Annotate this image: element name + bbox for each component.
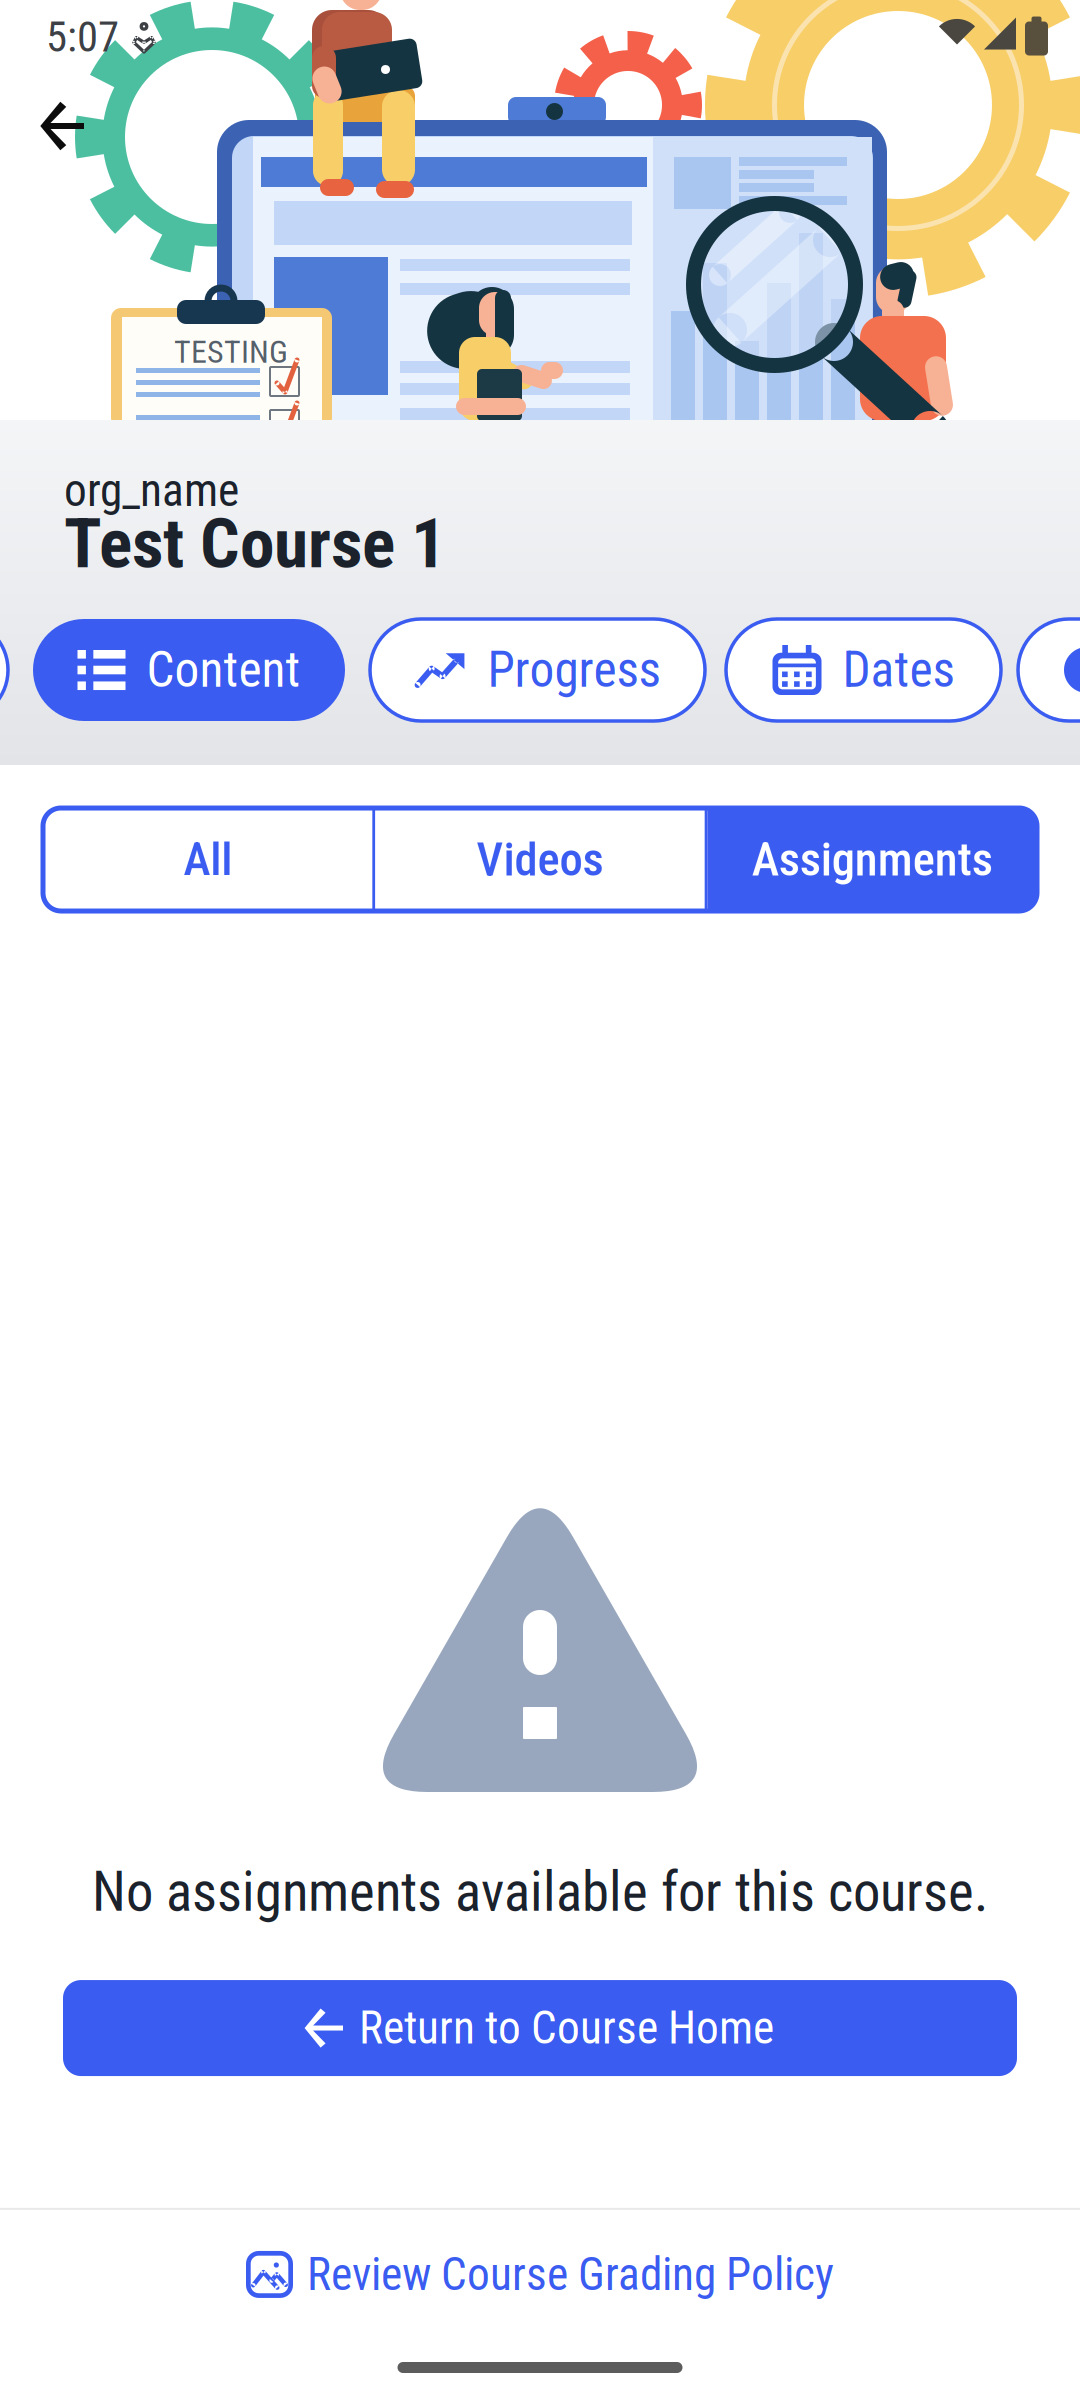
staticText: Videos: [476, 832, 603, 887]
button[interactable]: Progress: [370, 619, 705, 721]
staticText: org_name: [64, 464, 239, 517]
button[interactable]: Videos: [375, 808, 705, 911]
staticText: No assignments available for this course…: [92, 1860, 988, 1924]
staticText: Review Course Grading Policy: [307, 2248, 834, 2301]
staticText: 5:07: [46, 12, 119, 62]
staticText: Progress: [487, 641, 660, 699]
button[interactable]: Dates: [726, 619, 1001, 721]
button[interactable]: Review Course Grading Policy: [0, 2210, 1080, 2344]
button[interactable]: Assignments: [708, 808, 1037, 911]
staticText: Return to Course Home: [359, 2001, 774, 2055]
staticText: Test Course 1: [64, 503, 446, 584]
staticText: Assignments: [752, 832, 993, 887]
button[interactable]: Content: [33, 619, 345, 721]
button[interactable]: Back: [12, 76, 114, 176]
button[interactable]: All: [43, 808, 372, 911]
staticText: TESTING: [174, 333, 288, 370]
staticText: Dates: [842, 641, 954, 699]
staticText: All: [183, 832, 232, 887]
staticText: Content: [146, 641, 300, 699]
button[interactable]: Return to Course Home: [63, 1980, 1017, 2076]
